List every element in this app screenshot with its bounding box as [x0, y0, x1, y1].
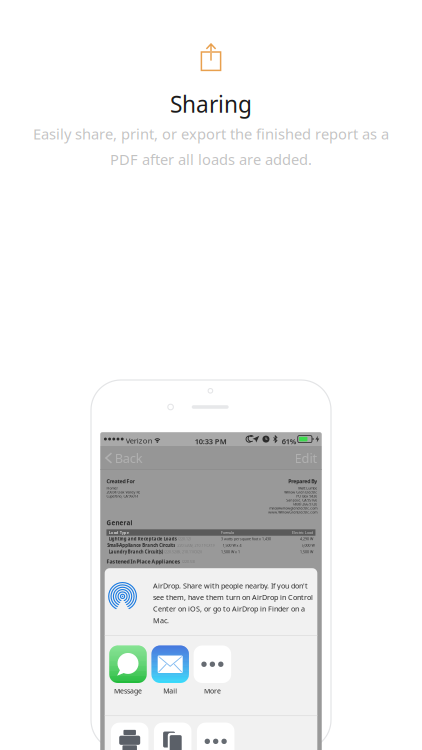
staticText: 10:33 PM: [195, 436, 227, 446]
staticText: Fastened In Place Appliances: [106, 558, 180, 565]
staticText: 4,290 W: [300, 536, 313, 541]
staticText: Verizon: [126, 435, 153, 446]
staticText: Matt Lumbo: [298, 486, 317, 491]
staticText: Laundry Branch Circuit(s): [109, 549, 163, 555]
button[interactable]: Action: [151, 723, 194, 750]
staticText: Mail: [163, 686, 177, 696]
staticText: Back: [115, 449, 143, 467]
staticText: Center on iOS, or go to AirDrop in Finde…: [153, 604, 305, 614]
staticText: San Jose, CA 95160: [286, 498, 317, 503]
staticText: Lighting and Receptacle Loads: [109, 536, 177, 542]
staticText: 6,000 W: [302, 543, 315, 548]
staticText: PDF after all loads are added.: [110, 150, 312, 169]
staticText: (220.12): [178, 536, 191, 541]
button[interactable]: Mail: [149, 636, 191, 696]
button[interactable]: Message: [107, 636, 149, 696]
staticText: Load Type: [109, 530, 129, 535]
staticText: PO Box 9430: [296, 494, 317, 499]
staticText: Willow Glen Electric: [284, 490, 317, 495]
staticText: Prepared By: [288, 478, 317, 485]
button[interactable]: Back: [100, 445, 143, 471]
staticText: (408) 266-9720: [293, 502, 317, 507]
staticText: Message: [114, 686, 142, 696]
staticText: www.WillowGlenElectric.com: [268, 510, 317, 515]
staticText: Formula: [221, 530, 234, 535]
staticText: (220.52(A), 210.11(C)(1)): [177, 543, 215, 548]
staticText: Small-Appliance Branch Circuits: [107, 542, 175, 548]
staticText: More: [204, 686, 221, 696]
staticText: milo@willowglenelectric.com: [269, 506, 317, 511]
button[interactable]: Action: [108, 723, 151, 750]
staticText: Mac.: [153, 615, 169, 625]
staticText: Sharing: [170, 89, 252, 119]
staticText: AirDrop. Share with people nearby. If yo…: [153, 581, 308, 590]
staticText: 3 watts per square foot x 1,430: [221, 536, 271, 541]
staticText: (220.52(B), 210.11(C)(2)): [164, 549, 202, 554]
staticText: General: [106, 519, 132, 527]
staticText: 1,500 W x 4: [223, 543, 242, 548]
staticText: Cupertino, CA 96014: [106, 494, 138, 499]
staticText: 1,500 W: [300, 549, 313, 554]
staticText: Homer: [106, 486, 117, 491]
staticText: Edit: [295, 449, 318, 467]
button[interactable]: More: [191, 636, 233, 696]
staticText: 61%: [282, 436, 297, 446]
staticText: Electric Load: [292, 530, 313, 535]
button[interactable]: Edit: [295, 445, 322, 471]
staticText: 20694 Oak Valley Rd: [106, 490, 140, 495]
staticText: (220.53): [182, 559, 195, 564]
staticText: 1,500 W x 1: [221, 549, 240, 554]
button[interactable]: Action: [194, 723, 237, 750]
staticText: Created For: [106, 478, 134, 485]
staticText: Easily share, print, or export the finis…: [33, 124, 389, 144]
staticText: see them, have them turn on AirDrop in C…: [153, 592, 313, 602]
